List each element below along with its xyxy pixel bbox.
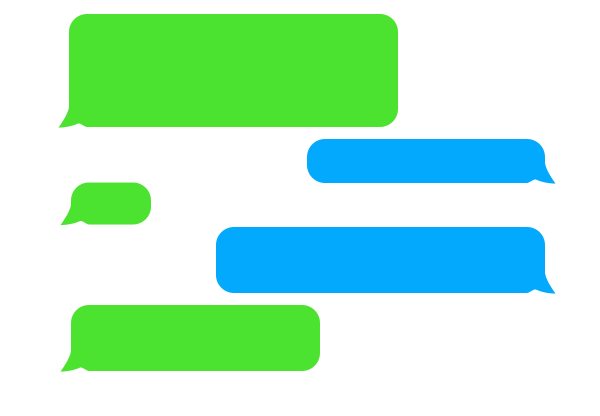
button[interactable]: Sent message <box>216 227 555 293</box>
button[interactable]: Received message <box>60 182 151 224</box>
button[interactable]: Sent message <box>307 139 555 183</box>
button[interactable]: Received message <box>60 305 320 371</box>
button[interactable]: Received message <box>58 14 398 127</box>
